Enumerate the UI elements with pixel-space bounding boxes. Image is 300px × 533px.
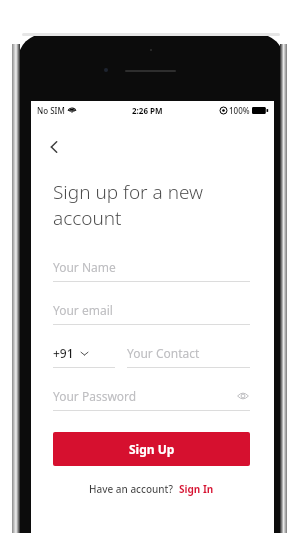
staticText: No SIM bbox=[37, 105, 65, 116]
staticText: Your Name bbox=[53, 259, 116, 275]
button[interactable]: Sign In bbox=[179, 482, 214, 496]
staticText: +91 bbox=[53, 345, 74, 361]
button[interactable]: Show password bbox=[236, 389, 250, 403]
button[interactable]: Sign Up bbox=[53, 432, 250, 466]
staticText: Sign In bbox=[179, 482, 214, 496]
staticText: Have an account? bbox=[89, 482, 179, 496]
button[interactable]: Your Contact bbox=[127, 342, 250, 364]
button[interactable]: Your email bbox=[53, 299, 250, 321]
button[interactable]: +91 bbox=[53, 342, 115, 364]
button[interactable]: Your Password bbox=[53, 385, 250, 407]
staticText: Your Contact bbox=[127, 345, 200, 361]
staticText: 2:26 PM bbox=[132, 105, 163, 116]
staticText: Sign Up bbox=[129, 441, 175, 457]
button[interactable]: Your Name bbox=[53, 256, 250, 278]
staticText: Sign up for a new account bbox=[53, 179, 250, 230]
button[interactable]: Back bbox=[39, 131, 71, 163]
staticText: Your Password bbox=[53, 388, 137, 404]
staticText: 100% bbox=[229, 105, 250, 116]
staticText: Your email bbox=[53, 302, 113, 318]
